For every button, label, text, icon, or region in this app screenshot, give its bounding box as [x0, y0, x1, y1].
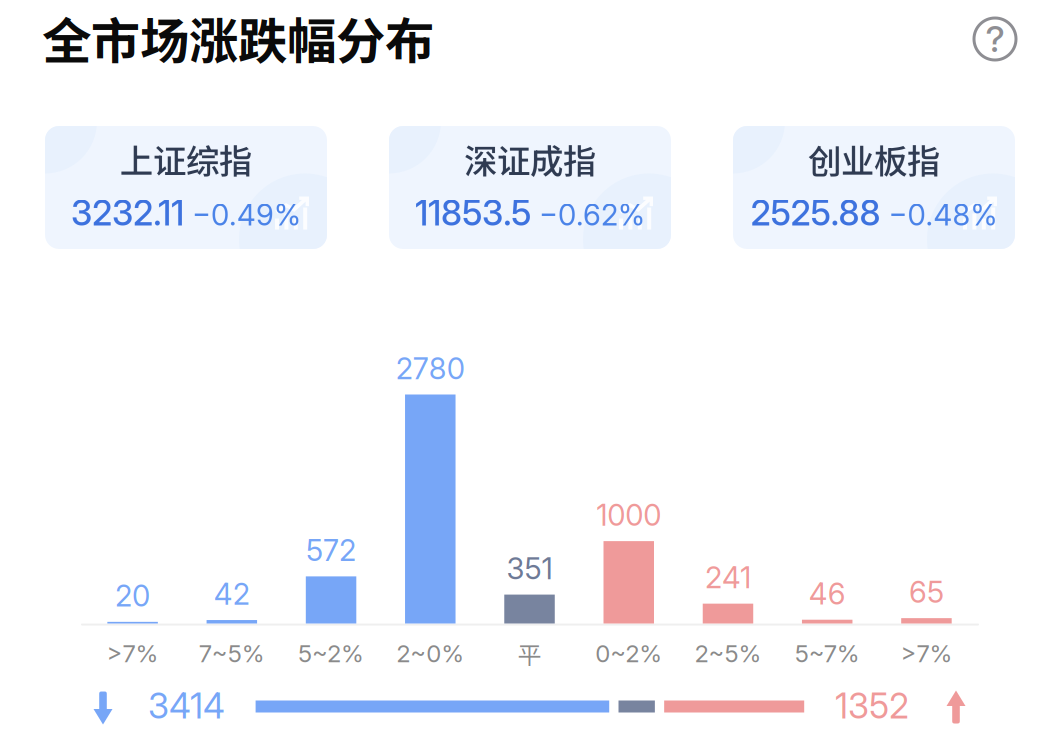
- staticText: 3414: [148, 685, 225, 727]
- button[interactable]: 深证成指: [389, 126, 671, 249]
- staticText: 深证成指: [464, 135, 596, 183]
- staticText: 46: [809, 576, 846, 611]
- staticText: ?: [985, 17, 1004, 61]
- staticText: 1000: [596, 497, 661, 533]
- staticText: 创业板指: [808, 135, 940, 183]
- staticText: 351: [506, 551, 552, 586]
- staticText: 572: [306, 533, 356, 568]
- staticText: 7~5%: [199, 639, 265, 668]
- button[interactable]: 上证综指: [45, 126, 327, 249]
- staticText: 2~0%: [396, 639, 464, 668]
- staticText: 2~5%: [694, 639, 761, 668]
- staticText: >7%: [107, 639, 159, 668]
- button[interactable]: 创业板指: [733, 126, 1015, 249]
- button[interactable]: 帮助: [972, 16, 1018, 62]
- staticText: 全市场涨跌幅分布: [42, 2, 434, 73]
- staticText: 241: [705, 560, 751, 595]
- staticText: >7%: [900, 639, 952, 668]
- staticText: 11853.5: [415, 192, 531, 234]
- staticText: 上证综指: [120, 135, 252, 183]
- staticText: 2525.88: [750, 192, 880, 234]
- staticText: 5~2%: [298, 639, 364, 668]
- staticText: −0.49%: [192, 197, 301, 233]
- staticText: 平: [517, 636, 541, 671]
- staticText: 3232.11: [71, 192, 184, 234]
- staticText: −0.48%: [888, 197, 997, 233]
- staticText: 1352: [835, 685, 909, 727]
- staticText: 5~7%: [795, 639, 860, 668]
- staticText: 2780: [396, 351, 465, 386]
- staticText: 0~2%: [595, 639, 662, 668]
- staticText: 20: [115, 578, 150, 614]
- staticText: 42: [214, 576, 250, 612]
- staticText: −0.62%: [539, 197, 645, 233]
- staticText: 65: [909, 574, 944, 610]
